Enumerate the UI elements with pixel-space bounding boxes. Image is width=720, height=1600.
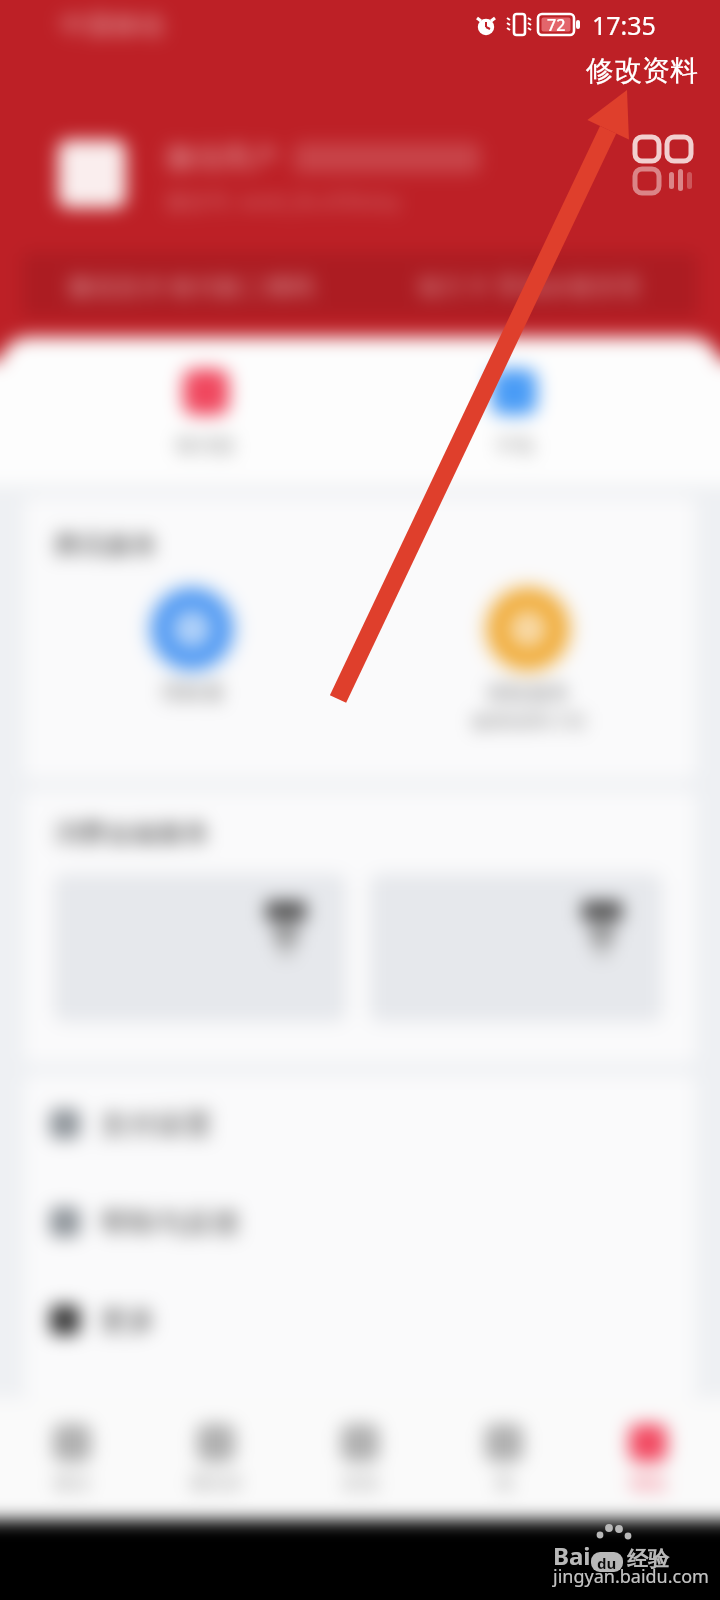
- staticText: 收付款: [176, 433, 236, 458]
- staticText: 消费金融服务: [54, 817, 210, 850]
- button[interactable]: 理财通: [24, 562, 360, 779]
- button[interactable]: 卡包: [360, 337, 668, 485]
- button[interactable]: 帮助与反馈: [24, 1173, 696, 1271]
- staticText: 经验: [627, 1546, 669, 1572]
- button[interactable]: 更多: [24, 1271, 696, 1369]
- staticText: 中国移动: [60, 9, 164, 42]
- staticText: jingyan.baidu.com: [553, 1564, 709, 1589]
- staticText: 微信: [54, 1472, 90, 1495]
- staticText: 微信支付 收付款二维码: [68, 269, 315, 302]
- staticText: 钱包: [630, 1472, 666, 1495]
- button[interactable]: 钱包: [576, 1398, 720, 1520]
- staticText: 微信号: wxid_8cu93kdxy: [166, 187, 401, 216]
- button[interactable]: 支付设置: [24, 1075, 696, 1173]
- staticText: 微信用户: [166, 140, 278, 175]
- button[interactable]: 收付款: [52, 337, 360, 485]
- staticText: 17:35: [592, 8, 656, 42]
- staticText: 修改资料: [586, 53, 698, 88]
- button[interactable]: 通讯录: [144, 1398, 288, 1520]
- button[interactable]: [54, 874, 346, 1022]
- staticText: 通讯录: [189, 1472, 243, 1495]
- staticText: 腾讯服务: [54, 529, 158, 562]
- staticText: 健康保障计划: [471, 710, 585, 734]
- staticText: 保险服务: [486, 680, 570, 706]
- button[interactable]: QR code: [633, 135, 694, 196]
- staticText: 理财通: [161, 680, 224, 706]
- button[interactable]: Avatar: [58, 140, 126, 208]
- staticText: 72: [547, 14, 566, 36]
- staticText: 卡包: [494, 433, 534, 458]
- button[interactable]: 发现: [288, 1398, 432, 1520]
- button[interactable]: 微信支付 收付款二维码: [22, 252, 360, 318]
- staticText: 发现: [342, 1472, 378, 1495]
- button[interactable]: [370, 874, 662, 1022]
- staticText: 帮助与反馈: [100, 1205, 240, 1240]
- button[interactable]: 保险服务: [360, 562, 696, 779]
- staticText: 支付设置: [100, 1107, 212, 1142]
- button[interactable]: 我: [432, 1398, 576, 1520]
- button[interactable]: 微信: [0, 1398, 144, 1520]
- staticText: du: [597, 1553, 617, 1573]
- staticText: Bai: [553, 1539, 591, 1572]
- button[interactable]: 银行卡 零钱余额管理: [360, 252, 698, 318]
- staticText: 银行卡 零钱余额管理: [418, 269, 641, 302]
- staticText: 更多: [100, 1303, 156, 1338]
